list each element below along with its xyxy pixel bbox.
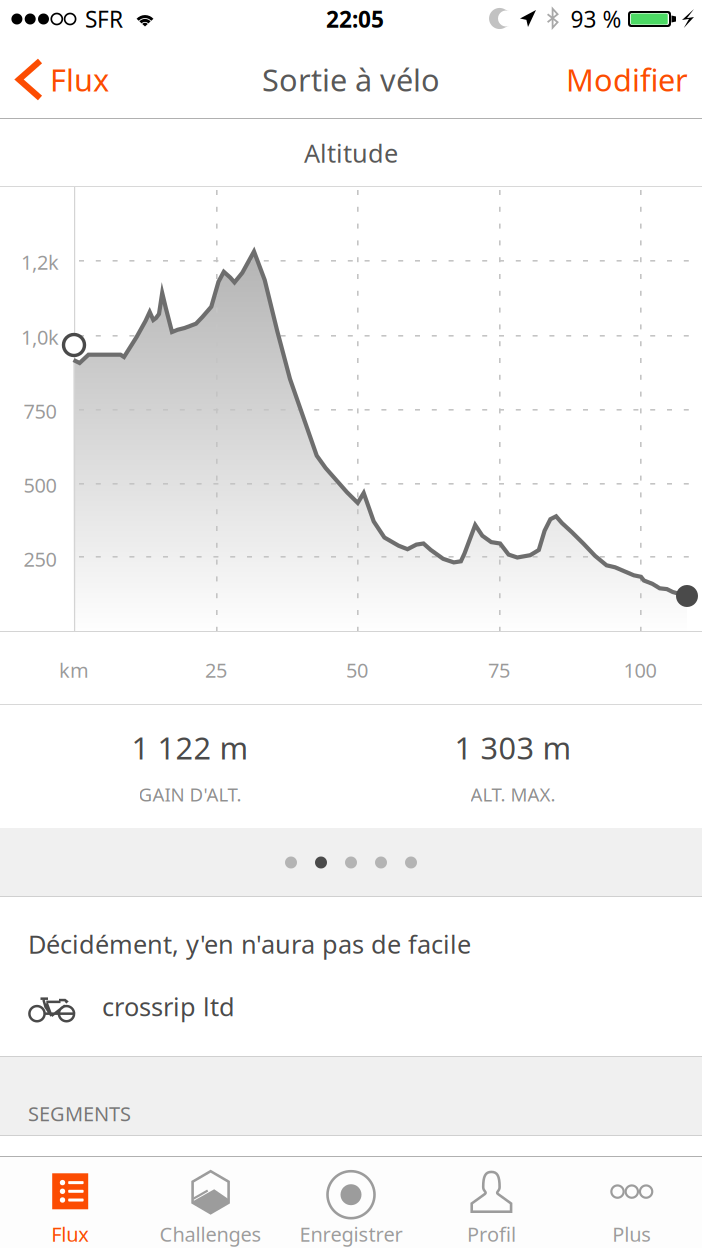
staticText: Profil: [467, 1221, 516, 1247]
staticText: Décidément, y'en n'aura pas de facile: [28, 927, 471, 961]
staticText: Modifier: [566, 59, 688, 100]
button[interactable]: Enregistrer: [281, 1156, 421, 1248]
staticText: Challenges: [160, 1221, 262, 1247]
staticText: 1 122 m: [131, 727, 248, 768]
staticText: crossrip ltd: [102, 990, 235, 1023]
staticText: 1,0k: [21, 324, 59, 350]
staticText: 1 303 m: [454, 727, 571, 768]
button[interactable]: Challenges: [140, 1156, 281, 1248]
staticText: 25: [205, 657, 227, 683]
button[interactable]: Flux: [0, 1156, 140, 1248]
staticText: GAIN D'ALT.: [138, 782, 241, 807]
button[interactable]: Flux: [0, 40, 125, 119]
staticText: Flux: [50, 59, 109, 100]
staticText: km: [59, 657, 89, 683]
staticText: ALT. MAX.: [470, 782, 555, 807]
staticText: 500: [23, 472, 56, 498]
staticText: Altitude: [304, 136, 398, 170]
staticText: 750: [23, 398, 56, 424]
staticText: 75: [488, 657, 510, 683]
staticText: 250: [23, 546, 56, 572]
staticText: Enregistrer: [299, 1221, 402, 1247]
button[interactable]: Plus: [562, 1156, 702, 1248]
staticText: SEGMENTS: [28, 1100, 131, 1127]
staticText: Flux: [51, 1221, 89, 1247]
staticText: Sortie à vélo: [262, 59, 440, 100]
staticText: Plus: [612, 1221, 651, 1247]
staticText: 100: [623, 657, 656, 683]
button[interactable]: Modifier: [546, 40, 702, 119]
staticText: 93 %: [570, 4, 621, 34]
staticText: 50: [346, 657, 368, 683]
staticText: 1,2k: [21, 249, 59, 275]
staticText: 22:05: [326, 4, 384, 34]
staticText: SFR: [85, 4, 123, 34]
button[interactable]: Profil: [421, 1156, 562, 1248]
